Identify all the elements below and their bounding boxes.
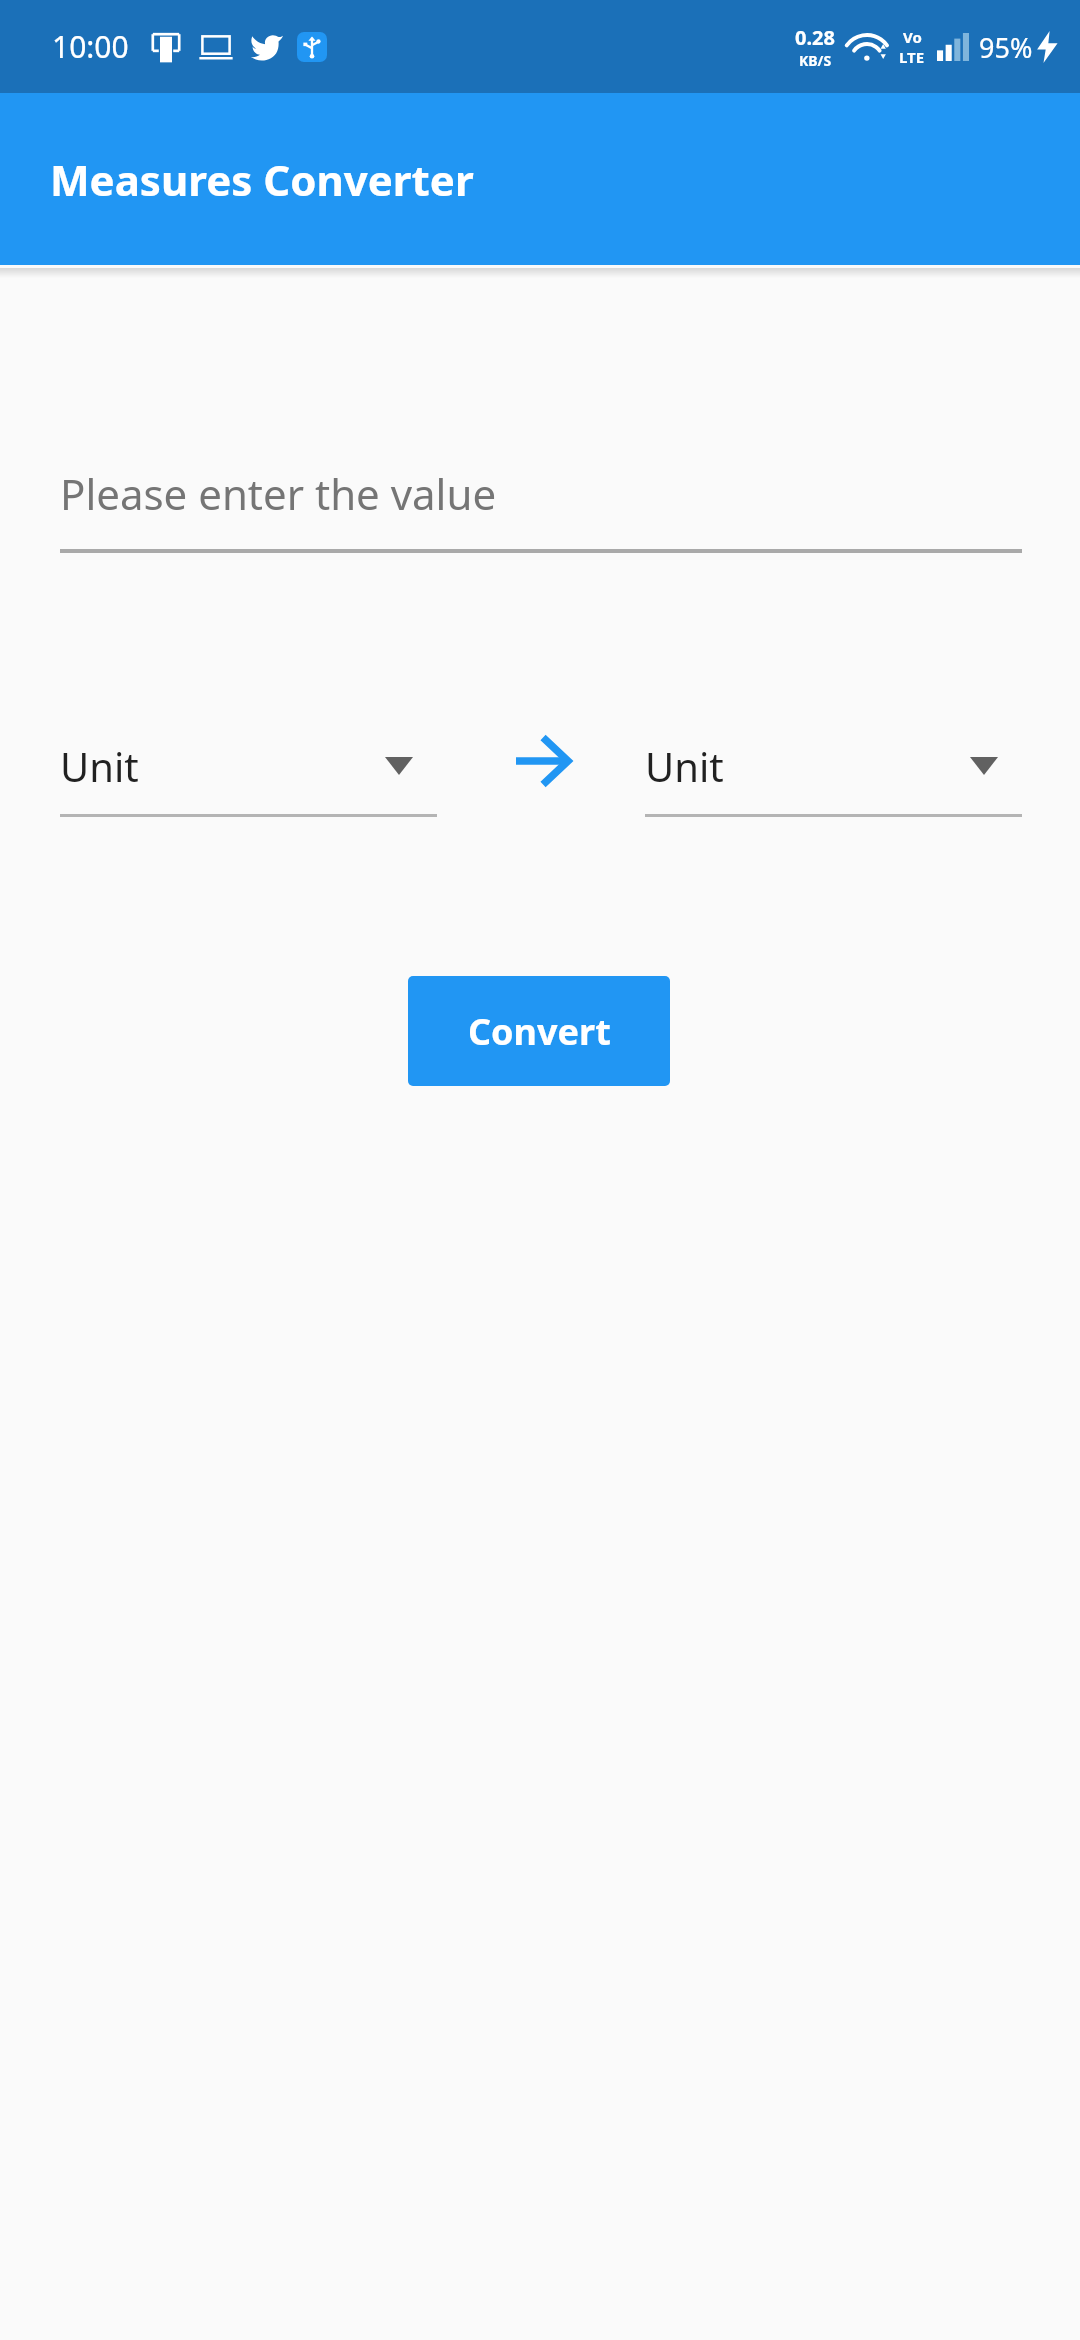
button[interactable]: Unit <box>60 718 437 817</box>
staticText: 95% <box>979 29 1033 66</box>
button[interactable]: Convert direction <box>497 716 587 806</box>
button[interactable]: Unit <box>645 718 1022 817</box>
staticText: Vo <box>903 27 922 47</box>
staticText: Unit <box>60 739 139 793</box>
staticText: Unit <box>645 739 724 793</box>
staticText: Convert <box>468 1007 611 1056</box>
staticText: Please enter the value <box>60 465 497 522</box>
staticText: 0.28 <box>795 24 835 51</box>
staticText: 10:00 <box>52 26 129 67</box>
button[interactable]: Convert <box>408 976 670 1086</box>
staticText: KB/S <box>799 51 832 70</box>
staticText: Measures Converter <box>50 151 474 208</box>
staticText: LTE <box>899 47 925 67</box>
button[interactable]: Please enter the value <box>60 438 1022 548</box>
